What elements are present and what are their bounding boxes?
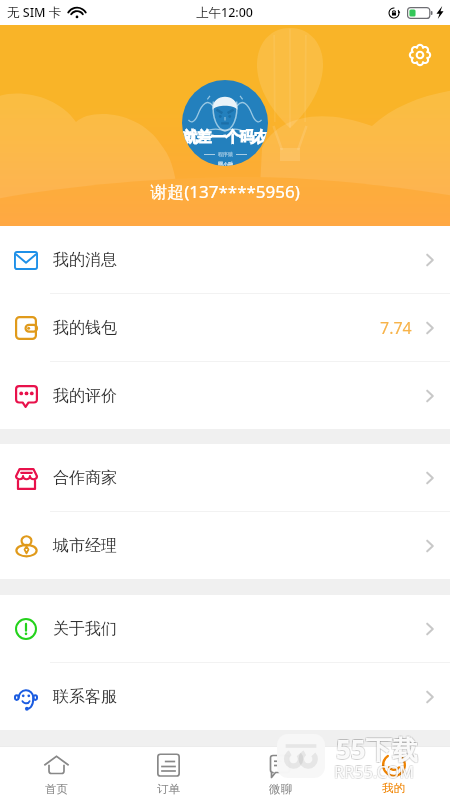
staticText: 微聊: [269, 782, 292, 796]
staticText: 55下载: [337, 732, 419, 768]
staticText: 首页: [45, 782, 68, 796]
staticText: 城市经理: [53, 536, 117, 556]
staticText: 网小融: [218, 161, 233, 166]
staticText: 关于我们: [53, 619, 117, 639]
button[interactable]: Avatar: [182, 80, 268, 166]
staticText: RR55.COM: [335, 761, 416, 783]
staticText: RR55.COM: [334, 762, 415, 784]
staticText: 55下载: [335, 730, 417, 766]
button[interactable]: 我的评价: [0, 362, 450, 429]
staticText: 订单: [157, 782, 180, 796]
button[interactable]: 微聊: [224, 746, 337, 800]
staticText: 谢超(137****5956): [150, 180, 300, 203]
staticText: 我的: [382, 781, 405, 795]
staticText: RR55.COM: [335, 760, 416, 782]
staticText: RR55.COM: [335, 762, 416, 784]
button[interactable]: 合作商家: [0, 444, 450, 511]
staticText: 55下载: [336, 730, 418, 766]
staticText: RR55.COM: [334, 761, 415, 783]
staticText: 我的消息: [53, 250, 117, 270]
staticText: 程序猿: [218, 151, 233, 157]
staticText: 55下载: [335, 731, 417, 767]
staticText: 7.74: [380, 317, 412, 339]
button[interactable]: 联系客服: [0, 663, 450, 730]
button[interactable]: 我的钱包: [0, 294, 450, 361]
staticText: 55下载: [337, 730, 419, 766]
staticText: 55下载: [337, 731, 419, 767]
button[interactable]: 城市经理: [0, 512, 450, 579]
staticText: 联系客服: [53, 687, 117, 707]
staticText: RR55.COM: [334, 760, 415, 782]
staticText: 我的钱包: [53, 318, 117, 338]
staticText: 无 SIM 卡: [7, 4, 62, 21]
staticText: 55下载: [336, 732, 418, 768]
staticText: 合作商家: [53, 468, 117, 488]
staticText: RR55.COM: [333, 762, 414, 784]
staticText: 55下载: [336, 731, 418, 767]
staticText: 上午12:00: [196, 4, 254, 21]
staticText: 我的评价: [53, 386, 117, 406]
staticText: RR55.COM: [333, 760, 414, 782]
button[interactable]: Settings: [403, 38, 437, 72]
button[interactable]: 我的: [337, 746, 450, 800]
staticText: RR55.COM: [333, 761, 414, 783]
button[interactable]: 关于我们: [0, 595, 450, 662]
button[interactable]: 订单: [112, 746, 224, 800]
button[interactable]: 我的消息: [0, 226, 450, 293]
staticText: 55下载: [335, 732, 417, 768]
staticText: 就差一个码农: [182, 128, 268, 147]
button[interactable]: 首页: [0, 746, 112, 800]
